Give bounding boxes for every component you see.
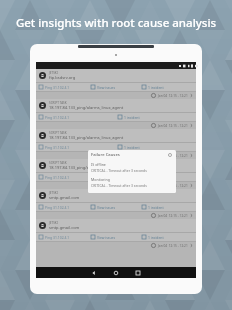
staticText: JETSKI	[49, 191, 58, 195]
staticText: SCRIPT TASK	[49, 131, 67, 135]
staticText: Monitoring	[91, 177, 110, 182]
button[interactable]: IS offline	[88, 160, 176, 175]
staticText: Jan 04 12:15 - 12:21	[158, 94, 188, 98]
staticText: 18.197.84.133_ping/alarms_linux_agent	[49, 165, 124, 170]
staticText: ftp.bsdsrv.org	[49, 75, 76, 80]
staticText: Ping 31.102.4.1	[45, 145, 70, 150]
button[interactable]: Ping 31.102.4.1	[39, 143, 114, 151]
staticText: smtp.gmail.com	[49, 195, 80, 200]
staticText: Ping 31.102.4.1	[45, 235, 70, 240]
staticText: JETSKI	[49, 71, 58, 75]
button[interactable]: 1 incident	[118, 173, 193, 181]
button[interactable]: 1 incident	[142, 233, 193, 241]
staticText: Jan 04 12:15 - 12:21	[158, 124, 188, 128]
button[interactable]: Settings	[167, 152, 173, 158]
button[interactable]: View issues	[91, 83, 142, 91]
staticText: JETSKI	[49, 221, 58, 225]
button[interactable]: Back	[83, 267, 105, 278]
button[interactable]: SCRIPT TASK	[36, 99, 196, 122]
staticText: smtp.gmail.com	[49, 225, 80, 230]
button[interactable]: Home	[105, 267, 127, 278]
button[interactable]: SCRIPT TASK	[36, 129, 196, 152]
button[interactable]: Ping 31.102.4.1	[39, 83, 91, 91]
staticText: Jan 04 12:15 - 12:21	[158, 184, 188, 188]
staticText: View issues	[97, 85, 116, 90]
staticText: SCRIPT TASK	[49, 101, 67, 105]
staticText: Ping 31.102.4.1	[45, 85, 70, 90]
staticText: Ping 31.102.4.1	[45, 205, 70, 210]
staticText: 18.197.84.133_ping/alarms_linux_agent	[49, 105, 124, 110]
button[interactable]: 1 incident	[118, 113, 193, 121]
button[interactable]: View issues	[91, 233, 142, 241]
staticText: Jan 04 12:15 - 12:21	[158, 214, 188, 218]
staticText: 1 incident	[124, 115, 140, 120]
staticText: Ping 31.102.4.1	[45, 175, 70, 180]
button[interactable]: Recents	[127, 267, 149, 278]
button[interactable]: Monitoring	[88, 175, 176, 190]
button[interactable]: SCRIPT TASK	[36, 159, 196, 182]
staticText: 1 incident	[148, 205, 164, 210]
staticText: CRITICAL - Timeout after 3 seconds	[91, 168, 147, 173]
staticText: Jan 04 12:15 - 12:21	[158, 244, 188, 248]
button[interactable]: Ping 31.102.4.1	[39, 113, 114, 121]
button[interactable]: View issues	[91, 203, 142, 211]
button[interactable]: JETSKI	[36, 69, 196, 92]
button[interactable]: 1 incident	[142, 83, 193, 91]
button[interactable]: Ping 31.102.4.1	[39, 173, 114, 181]
staticText: CRITICAL - Timeout after 3 seconds	[91, 183, 147, 188]
staticText: Ping 31.102.4.1	[45, 115, 70, 120]
staticText: SCRIPT TASK	[49, 161, 67, 165]
staticText: Jan 04 12:15 - 12:21	[158, 154, 188, 158]
staticText: 18.197.84.133_ping/alarms_linux_agent	[49, 135, 124, 140]
button[interactable]: 1 incident	[118, 143, 193, 151]
staticText: Get insights with root cause analysis	[0, 15, 232, 31]
button[interactable]: Ping 31.102.4.1	[39, 233, 91, 241]
staticText: 1 incident	[148, 235, 164, 240]
staticText: View issues	[97, 205, 116, 210]
staticText: 1 incident	[148, 85, 164, 90]
button[interactable]: 1 incident	[142, 203, 193, 211]
staticText: Failure Causes	[91, 152, 167, 158]
staticText: View issues	[97, 235, 116, 240]
staticText: 1 incident	[124, 145, 140, 150]
button[interactable]: Ping 31.102.4.1	[39, 203, 91, 211]
button[interactable]: JETSKI	[36, 189, 196, 212]
button[interactable]: JETSKI	[36, 219, 196, 242]
staticText: IS offline	[91, 162, 106, 167]
